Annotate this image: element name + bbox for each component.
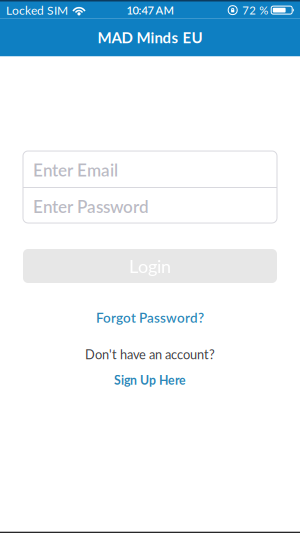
staticText: 72 %: [242, 3, 268, 17]
button[interactable]: Forgot Password?: [96, 309, 204, 326]
staticText: Forgot Password?: [96, 309, 204, 326]
staticText: 10:47 AM: [126, 3, 173, 17]
button[interactable]: Enter Password: [23, 188, 277, 223]
staticText: MAD Minds EU: [97, 28, 202, 46]
staticText: Don't have an account?: [85, 347, 215, 362]
button[interactable]: Login: [23, 249, 277, 283]
button[interactable]: Sign Up Here: [114, 372, 186, 387]
staticText: Locked SIM: [6, 3, 68, 17]
staticText: Login: [129, 255, 171, 277]
button[interactable]: Enter Email: [23, 151, 277, 187]
staticText: Sign Up Here: [114, 372, 186, 387]
staticText: Enter Email: [33, 160, 118, 180]
staticText: Enter Password: [33, 196, 149, 217]
